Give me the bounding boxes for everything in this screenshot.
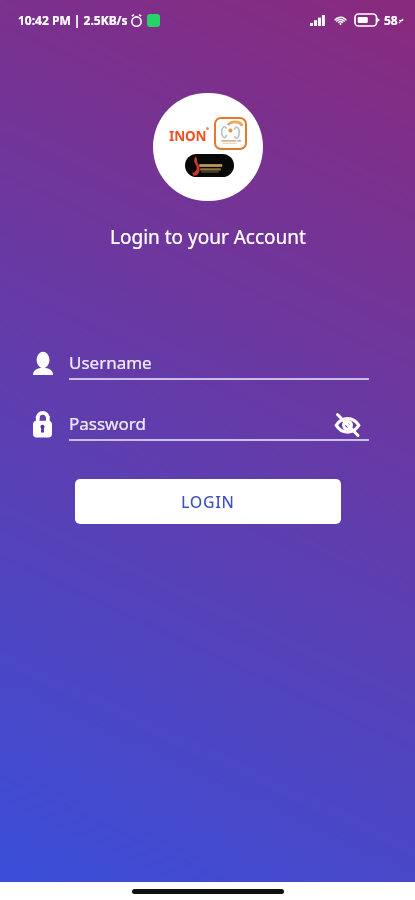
button[interactable]: Show password [335,412,360,437]
staticText: 10:42 PM | 2.5KB/s [18,12,128,28]
button[interactable]: LOGIN [75,479,341,524]
staticText: LOGIN [181,491,235,513]
staticText: INON [169,127,207,145]
staticText: Login to your Account [110,224,306,250]
staticText: Password [69,412,146,435]
staticText: Username [69,351,152,374]
staticText: 58 [384,12,398,28]
